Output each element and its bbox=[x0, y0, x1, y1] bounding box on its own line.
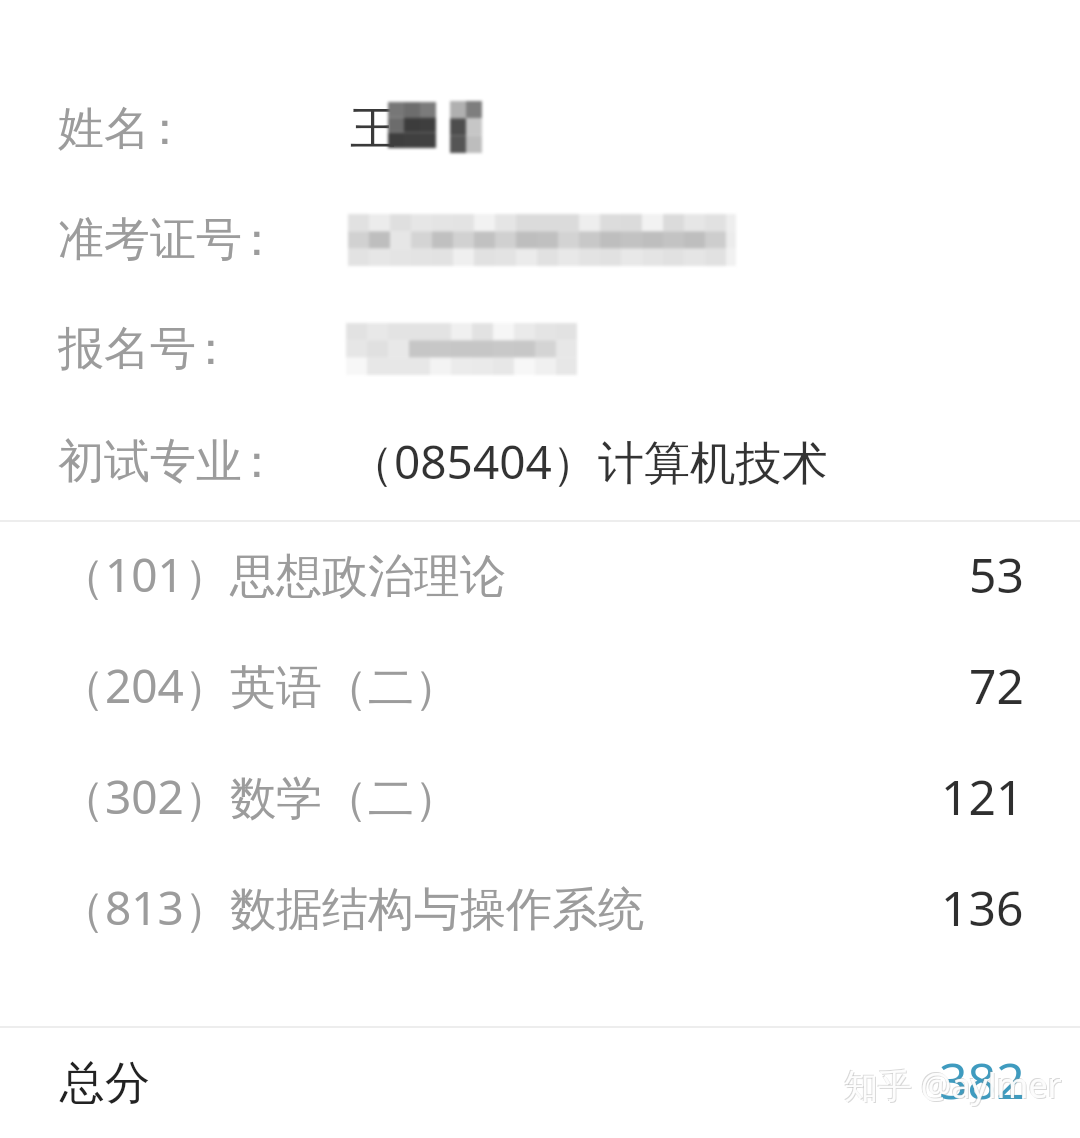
button[interactable]: 初试专业 bbox=[0, 406, 1080, 517]
staticText: ： bbox=[234, 211, 280, 269]
staticText: 总分 bbox=[60, 1055, 150, 1112]
button[interactable]: （204）英语（二） bbox=[0, 630, 1080, 741]
button[interactable]: 报名号 bbox=[0, 293, 1080, 404]
other: 已隐藏信息 bbox=[450, 101, 482, 153]
staticText: ： bbox=[188, 320, 234, 378]
staticText: 姓名 bbox=[58, 100, 150, 158]
staticText: （813）数据结构与操作系统 bbox=[59, 876, 644, 939]
button[interactable]: 总分 bbox=[0, 1028, 1080, 1138]
staticText: （085404）计算机技术 bbox=[348, 430, 828, 493]
button[interactable]: （101）思想政治理论 bbox=[0, 519, 1080, 630]
staticText: 王 bbox=[350, 100, 396, 158]
staticText: 121 bbox=[941, 764, 1024, 829]
button[interactable]: 姓名 bbox=[0, 73, 1080, 184]
button[interactable]: （813）数据结构与操作系统 bbox=[0, 852, 1080, 963]
staticText: 72 bbox=[969, 653, 1024, 718]
staticText: 知乎 @aylmer bbox=[845, 1063, 1063, 1109]
button[interactable]: 准考证号 bbox=[0, 184, 1080, 295]
staticText: 知乎 @aylmer bbox=[843, 1061, 1061, 1107]
staticText: 报名号 bbox=[58, 320, 196, 378]
staticText: （302）数学（二） bbox=[59, 765, 460, 828]
staticText: 53 bbox=[969, 542, 1024, 607]
button[interactable]: （302）数学（二） bbox=[0, 741, 1080, 852]
staticText: ： bbox=[234, 433, 280, 491]
other: 已隐藏信息 bbox=[348, 214, 736, 266]
other: 已隐藏信息 bbox=[346, 323, 577, 375]
other: 已隐藏信息 bbox=[388, 102, 436, 148]
staticText: 知乎 @aylmer bbox=[844, 1062, 1062, 1108]
staticText: 初试专业 bbox=[58, 433, 242, 491]
staticText: 382 bbox=[939, 1046, 1025, 1114]
staticText: （204）英语（二） bbox=[59, 654, 460, 717]
staticText: （101）思想政治理论 bbox=[59, 543, 506, 606]
staticText: 准考证号 bbox=[58, 211, 242, 269]
staticText: 136 bbox=[941, 875, 1024, 940]
staticText: ： bbox=[142, 100, 188, 158]
